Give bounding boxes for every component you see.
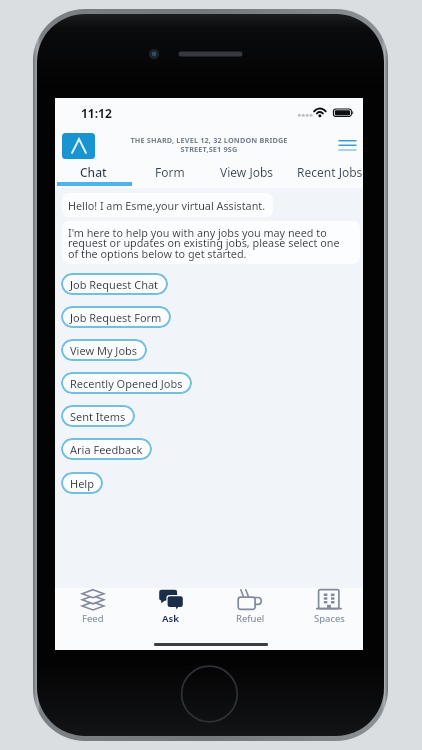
staticText: Aria Feedback	[70, 442, 143, 457]
staticText: Refuel	[236, 612, 265, 625]
button[interactable]: Chat	[55, 160, 131, 184]
button[interactable]: Job Request Chat	[61, 273, 168, 295]
button[interactable]: Recently Opened Jobs	[61, 372, 192, 394]
staticText: Hello! I am Esme,your virtual Assistant.	[68, 198, 266, 213]
button[interactable]: Aria Feedback	[61, 438, 152, 460]
button[interactable]: View Jobs	[209, 160, 285, 184]
staticText: Job Request Form	[70, 310, 162, 325]
staticText: Recent Jobs	[297, 164, 363, 180]
button[interactable]: Job Request Form	[61, 306, 171, 328]
staticText: View Jobs	[220, 164, 274, 180]
staticText: I'm here to help you with any jobs you m…	[68, 225, 352, 262]
staticText: Chat	[80, 164, 107, 180]
button[interactable]: Help	[61, 472, 103, 494]
staticText: Ask	[162, 612, 180, 625]
button[interactable]: Form	[132, 160, 208, 184]
staticText: Sent Items	[70, 409, 126, 424]
staticText: Feed	[82, 612, 104, 625]
staticText: Spaces	[314, 612, 345, 625]
button[interactable]: Ask	[147, 588, 195, 636]
staticText: 11:12	[81, 105, 112, 121]
button[interactable]: Home	[62, 133, 95, 159]
button[interactable]: Spaces	[305, 588, 353, 636]
button[interactable]: Refuel	[226, 588, 274, 636]
button[interactable]: View My Jobs	[61, 339, 147, 361]
staticText: Recently Opened Jobs	[70, 376, 183, 391]
staticText: Help	[70, 476, 94, 491]
staticText: Job Request Chat	[70, 277, 159, 292]
staticText: THE SHARD, LEVEL 12, 32 LONDON BRIDGE ST…	[119, 135, 299, 154]
staticText: Form	[155, 164, 185, 180]
button[interactable]: Feed	[69, 588, 117, 636]
button[interactable]: Recent Jobs	[292, 160, 368, 184]
staticText: View My Jobs	[70, 343, 138, 358]
button[interactable]: Menu	[334, 134, 361, 157]
button[interactable]: Sent Items	[61, 405, 135, 427]
